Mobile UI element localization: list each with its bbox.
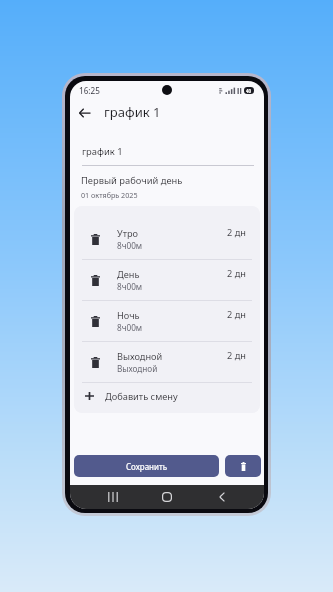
staticText: 2 дн — [227, 308, 246, 321]
button[interactable]: Delete День — [74, 260, 260, 300]
staticText: День — [117, 268, 140, 281]
button[interactable]: Delete Выходной — [74, 342, 260, 382]
button[interactable]: Delete Ночь — [74, 301, 260, 341]
other: Delete День — [74, 260, 117, 300]
staticText: Первый рабочий день — [81, 174, 183, 187]
staticText: 8ч00м — [117, 281, 143, 292]
staticText: Сохранить — [126, 461, 168, 472]
staticText: 16:25 — [79, 85, 100, 96]
button[interactable]: Back — [210, 485, 234, 509]
button[interactable]: Добавить смену — [74, 383, 260, 413]
staticText: 2 дн — [227, 267, 246, 280]
staticText: 2 дн — [227, 226, 246, 239]
staticText: график 1 — [104, 103, 161, 121]
staticText: график 1 — [82, 145, 123, 158]
staticText: Выходной — [117, 350, 163, 363]
staticText: Ночь — [117, 309, 140, 322]
staticText: 01 октябрь 2025 — [81, 190, 138, 200]
staticText: Утро — [117, 227, 138, 240]
button[interactable]: Delete schedule — [225, 455, 261, 477]
staticText: 8ч00м — [117, 240, 143, 251]
other: Delete Утро — [74, 219, 117, 259]
button[interactable]: Home — [155, 485, 179, 509]
button[interactable]: Back — [74, 102, 95, 123]
other: Delete Ночь — [74, 301, 117, 341]
button[interactable]: Recent apps — [101, 485, 125, 509]
staticText: 2 дн — [227, 349, 246, 362]
staticText: Выходной — [117, 363, 158, 374]
button[interactable]: Сохранить — [74, 455, 219, 477]
staticText: 8ч00м — [117, 322, 143, 333]
staticText: Добавить смену — [105, 390, 178, 403]
button[interactable]: Delete Утро — [74, 219, 260, 259]
staticText: 40 — [246, 88, 252, 94]
other: Delete Выходной — [74, 342, 117, 382]
